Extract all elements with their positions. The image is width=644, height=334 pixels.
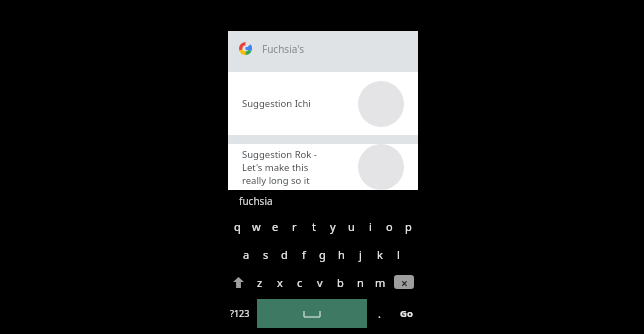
button[interactable]: k (370, 240, 389, 268)
staticText: e (272, 219, 279, 234)
button[interactable]: Backspace (390, 268, 418, 296)
button[interactable]: q (227, 212, 247, 240)
button[interactable]: i (361, 212, 380, 240)
button[interactable]: m (370, 268, 390, 296)
staticText: Let's make this (242, 161, 309, 174)
button[interactable]: fuchsia (215, 190, 430, 212)
staticText: really long so it (242, 174, 310, 187)
button[interactable]: y (323, 212, 342, 240)
staticText: o (386, 219, 393, 234)
staticText: Fuchsia's (262, 42, 304, 56)
button[interactable]: j (351, 240, 370, 268)
staticText: h (338, 247, 345, 262)
staticText: fuchsia (239, 194, 273, 208)
staticText: . (378, 306, 381, 321)
staticText: Suggestion Ichi (242, 97, 311, 110)
staticText: j (359, 247, 362, 262)
staticText: s (263, 247, 269, 262)
staticText: × (401, 275, 408, 289)
button[interactable]: f (294, 240, 313, 268)
staticText: r (292, 219, 297, 234)
staticText: p (405, 219, 412, 234)
staticText: a (243, 247, 250, 262)
button[interactable]: x (270, 268, 290, 296)
staticText: x (277, 275, 283, 290)
button[interactable]: d (275, 240, 294, 268)
staticText: k (377, 247, 383, 262)
button[interactable]: z (250, 268, 270, 296)
button[interactable]: Shift (227, 268, 250, 296)
button[interactable]: l (389, 240, 408, 268)
button[interactable]: v (310, 268, 330, 296)
button[interactable]: a (237, 240, 256, 268)
button[interactable]: ?123 (223, 296, 257, 330)
button[interactable]: s (256, 240, 275, 268)
staticText: g (319, 247, 326, 262)
button[interactable]: g (313, 240, 332, 268)
button[interactable]: r (285, 212, 304, 240)
button[interactable]: n (350, 268, 370, 296)
staticText: i (369, 219, 372, 234)
staticText: f (302, 247, 306, 262)
staticText: m (375, 275, 386, 290)
staticText: Suggestion Rok - (242, 148, 317, 161)
button[interactable]: Fuchsia's (228, 31, 418, 66)
staticText: v (317, 275, 323, 290)
staticText: n (357, 275, 364, 290)
staticText: u (348, 219, 355, 234)
staticText: y (330, 219, 336, 234)
staticText: q (234, 219, 241, 234)
staticText: t (312, 219, 316, 234)
button[interactable]: Space (257, 299, 367, 328)
staticText: w (252, 219, 261, 234)
button[interactable]: Suggestion Rok - (228, 144, 418, 190)
staticText: d (281, 247, 288, 262)
button[interactable]: c (290, 268, 310, 296)
staticText: b (337, 275, 344, 290)
staticText: l (397, 247, 400, 262)
button[interactable]: h (332, 240, 351, 268)
button[interactable]: b (330, 268, 350, 296)
staticText: c (297, 275, 303, 290)
button[interactable]: w (247, 212, 266, 240)
button[interactable]: . (367, 296, 391, 330)
button[interactable]: o (380, 212, 399, 240)
staticText: Go (400, 307, 413, 320)
button[interactable]: Go (391, 296, 422, 330)
button[interactable]: u (342, 212, 361, 240)
button[interactable]: t (304, 212, 323, 240)
button[interactable]: Suggestion Ichi (228, 72, 418, 135)
button[interactable]: e (266, 212, 285, 240)
button[interactable]: p (399, 212, 418, 240)
staticText: z (257, 275, 263, 290)
staticText: ?123 (230, 307, 250, 319)
